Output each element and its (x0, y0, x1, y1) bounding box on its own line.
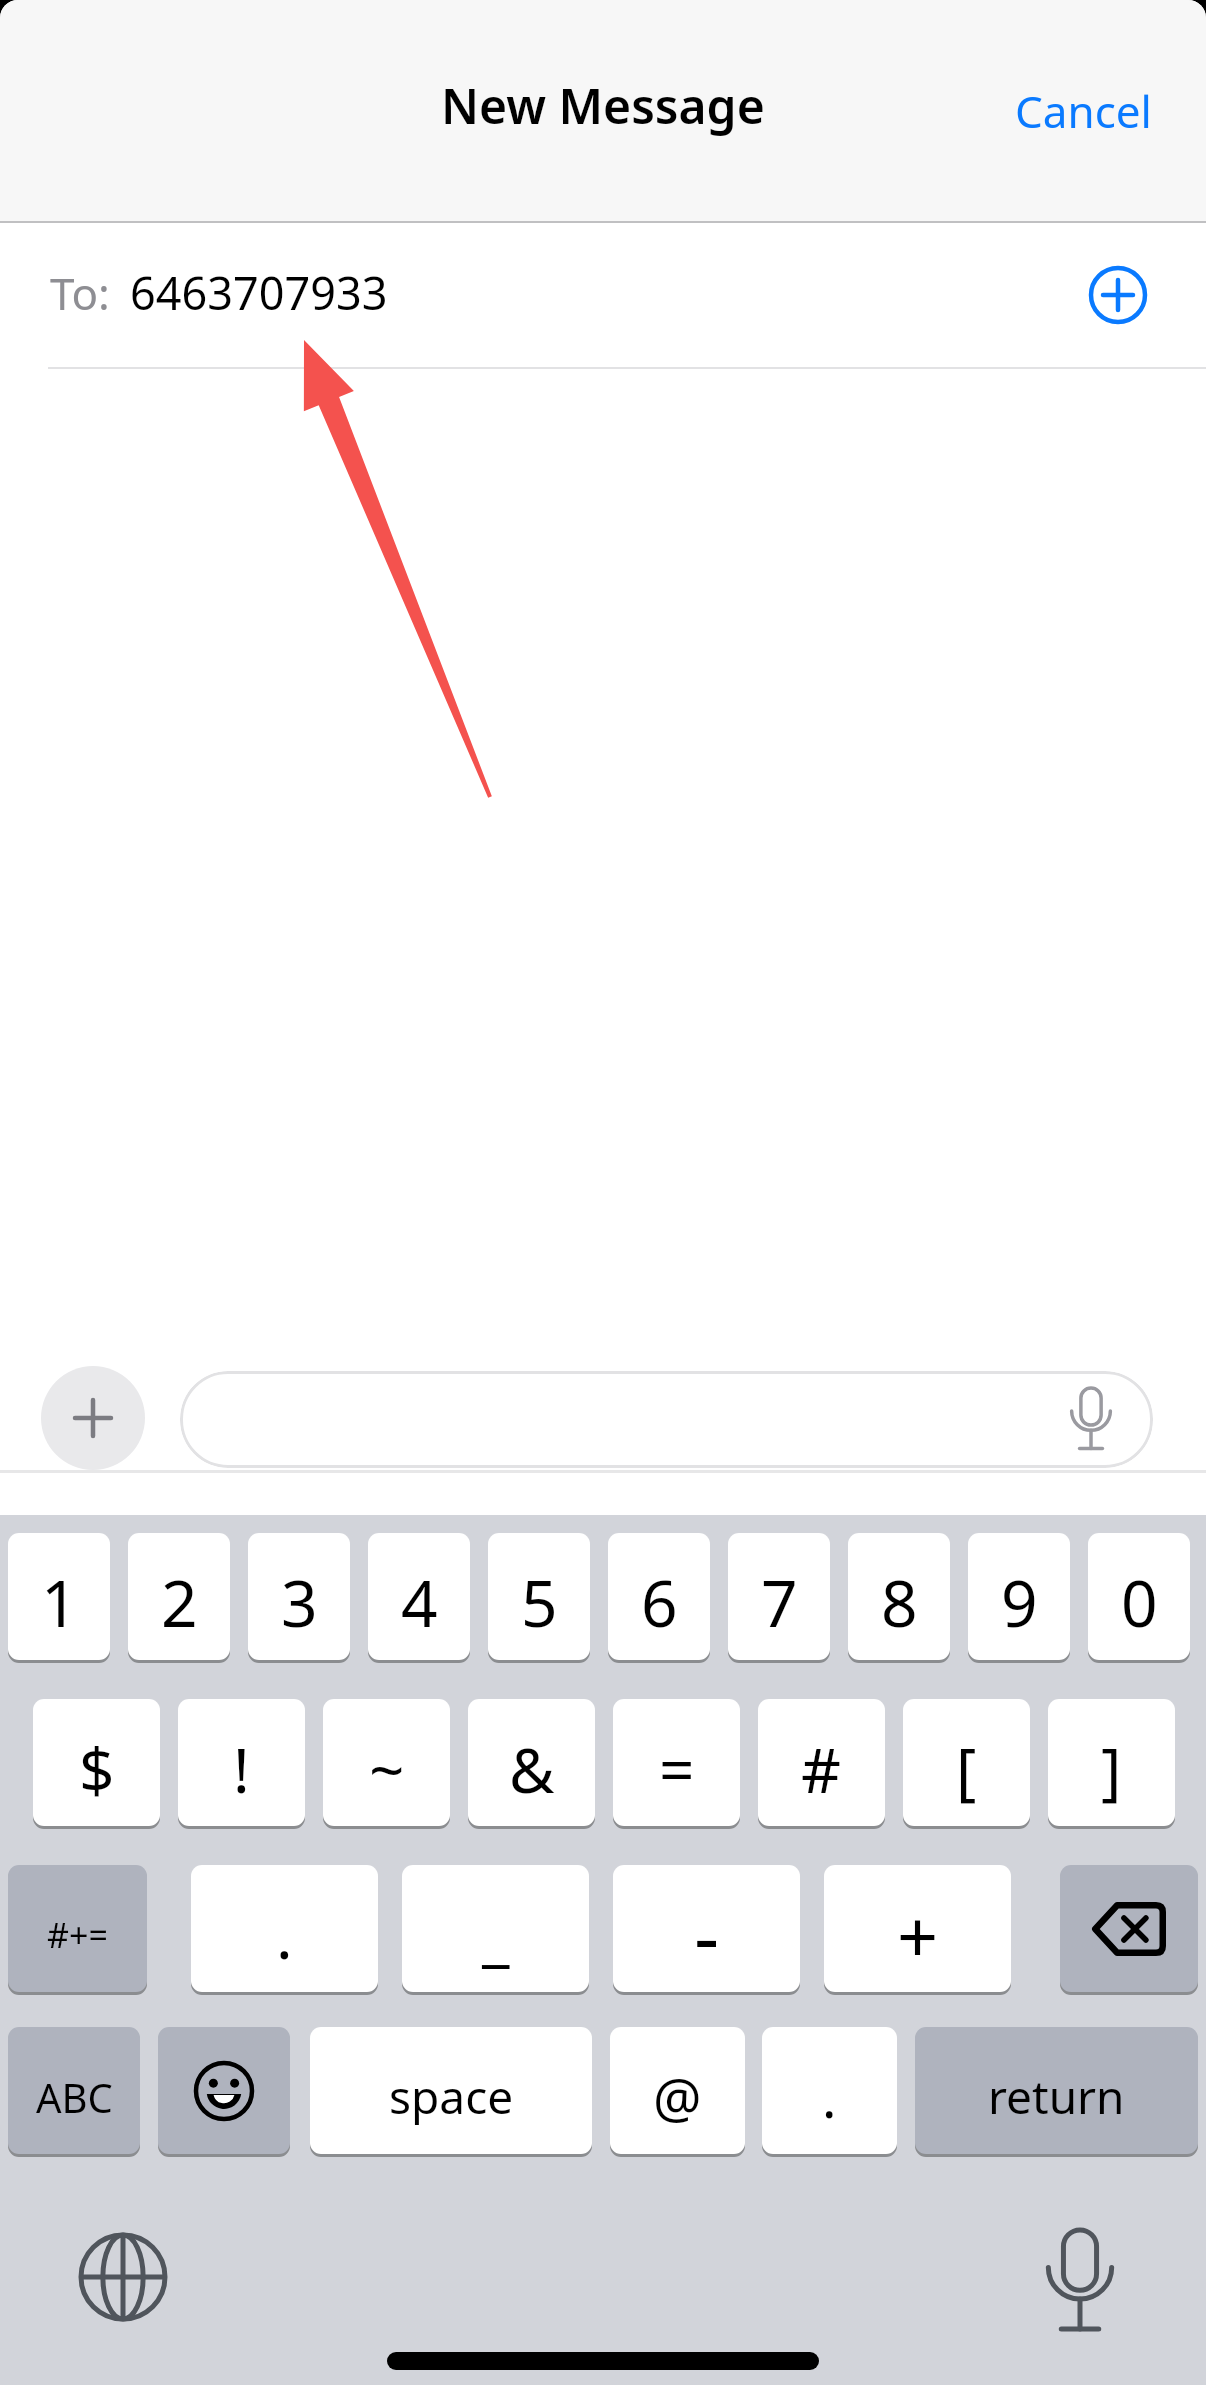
button[interactable] (180, 1371, 1153, 1468)
staticText: New Message (441, 73, 765, 138)
staticText: = (659, 1727, 695, 1811)
staticText: 7 (761, 1559, 798, 1646)
staticText: 1 (41, 1559, 78, 1646)
staticText: $ (79, 1727, 115, 1811)
button[interactable]: 2 (128, 1533, 230, 1660)
button[interactable]: Cancel (1015, 81, 1152, 141)
button[interactable] (78, 2232, 168, 2322)
staticText: space (389, 2065, 514, 2128)
staticText: 3 (281, 1559, 318, 1646)
staticText: 5 (521, 1559, 558, 1646)
button[interactable]: return (915, 2027, 1198, 2154)
button[interactable] (1060, 1865, 1198, 1992)
button[interactable]: . (191, 1865, 378, 1992)
staticText: # (801, 1727, 842, 1811)
button[interactable]: ! (178, 1699, 305, 1826)
button[interactable]: ] (1048, 1699, 1175, 1826)
staticText: - (694, 1882, 720, 1988)
staticText: ] (1101, 1727, 1122, 1811)
button[interactable]: 3 (248, 1533, 350, 1660)
button[interactable]: To: (0, 223, 1206, 367)
button[interactable]: [ (903, 1699, 1030, 1826)
button[interactable]: _ (402, 1865, 589, 1992)
staticText: To: (50, 263, 110, 323)
staticText: 4 (401, 1559, 438, 1646)
button[interactable] (1088, 265, 1148, 325)
staticText: . (276, 1893, 293, 1977)
staticText: ABC (36, 2070, 113, 2124)
button[interactable]: . (762, 2027, 897, 2154)
button[interactable]: = (613, 1699, 740, 1826)
button[interactable] (158, 2027, 290, 2154)
staticText: 6 (641, 1559, 678, 1646)
staticText: @ (653, 2060, 702, 2134)
staticText: ~ (369, 1727, 405, 1811)
button[interactable]: # (758, 1699, 885, 1826)
button[interactable]: 0 (1088, 1533, 1190, 1660)
staticText: return (988, 2065, 1125, 2128)
button[interactable]: $ (33, 1699, 160, 1826)
button[interactable] (1044, 2230, 1116, 2334)
button[interactable]: + (824, 1865, 1011, 1992)
button[interactable]: 9 (968, 1533, 1070, 1660)
button[interactable]: space (310, 2027, 592, 2154)
button[interactable] (41, 1366, 145, 1470)
staticText: 6463707933 (130, 262, 388, 323)
staticText: ! (233, 1727, 250, 1811)
staticText: 9 (1001, 1559, 1038, 1646)
button[interactable]: @ (610, 2027, 745, 2154)
button[interactable]: 1 (8, 1533, 110, 1660)
staticText: 0 (1121, 1559, 1158, 1646)
button[interactable]: 8 (848, 1533, 950, 1660)
button[interactable]: ABC (8, 2027, 140, 2154)
button[interactable]: 4 (368, 1533, 470, 1660)
button[interactable]: 7 (728, 1533, 830, 1660)
staticText: . (822, 2060, 837, 2134)
button[interactable]: 6 (608, 1533, 710, 1660)
staticText: [ (956, 1727, 977, 1811)
button[interactable]: #+= (8, 1865, 147, 1992)
staticText: _ (482, 1893, 510, 1977)
staticText: & (509, 1727, 555, 1811)
staticText: #+= (47, 1912, 108, 1958)
staticText: + (897, 1886, 939, 1984)
button[interactable]: ~ (323, 1699, 450, 1826)
staticText: 8 (881, 1559, 918, 1646)
button[interactable]: & (468, 1699, 595, 1826)
button[interactable]: 5 (488, 1533, 590, 1660)
button[interactable]: - (613, 1865, 800, 1992)
staticText: Cancel (1015, 81, 1152, 141)
staticText: 2 (161, 1559, 198, 1646)
